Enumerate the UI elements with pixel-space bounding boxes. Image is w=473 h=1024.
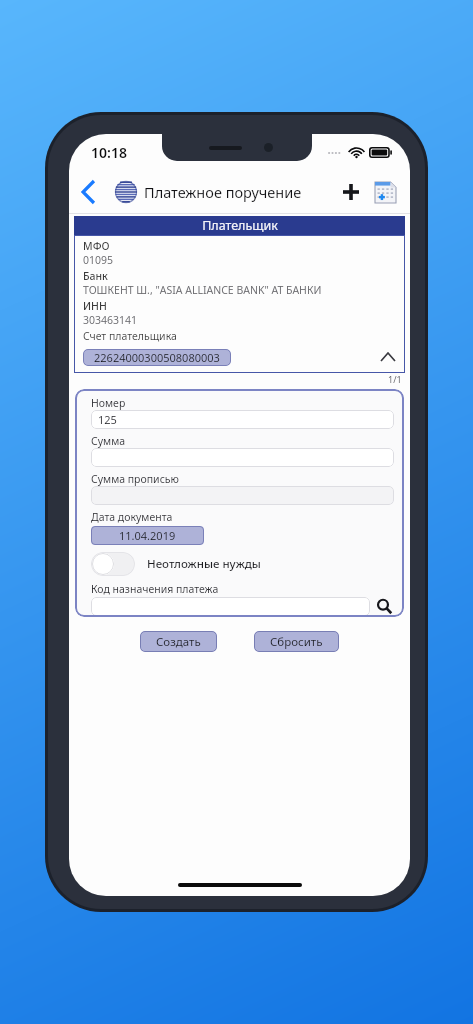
staticText: Сбросить xyxy=(270,634,323,650)
staticText: 22624000300508080003 xyxy=(94,350,220,365)
staticText: ИНН xyxy=(83,299,107,313)
button[interactable]: 125 xyxy=(91,410,394,429)
staticText: МФО xyxy=(83,239,110,253)
staticText: 125 xyxy=(98,412,117,427)
staticText: 1/1 xyxy=(388,373,402,385)
staticText: 10:18 xyxy=(91,143,127,162)
button[interactable]: Collapse xyxy=(377,346,399,368)
staticText: Платежное поручение xyxy=(144,182,302,202)
button[interactable]: Сбросить xyxy=(254,631,339,652)
button[interactable] xyxy=(91,486,394,505)
button[interactable]: Создать xyxy=(140,631,217,652)
staticText: Счет плательщика xyxy=(83,329,177,343)
staticText: ТОШКЕНТ Ш., "ASIA ALLIANCE BANK" АТ БАНК… xyxy=(83,283,322,297)
staticText: Код назначения платежа xyxy=(91,582,219,596)
staticText: Банк xyxy=(83,269,108,283)
button[interactable]: 11.04.2019 xyxy=(91,526,204,545)
staticText: 01095 xyxy=(83,253,114,267)
button[interactable]: Плательщик xyxy=(74,216,405,235)
staticText: Создать xyxy=(156,634,201,650)
staticText: Неотложные нужды xyxy=(147,556,261,572)
staticText: Сумма прописью xyxy=(91,472,179,486)
button[interactable] xyxy=(91,597,370,616)
staticText: Дата документа xyxy=(91,510,173,524)
button[interactable] xyxy=(91,448,394,467)
button[interactable] xyxy=(91,552,135,576)
button[interactable]: Back xyxy=(69,173,107,211)
button[interactable]: Search payment code xyxy=(374,596,394,616)
button[interactable]: 22624000300508080003 xyxy=(83,349,231,366)
staticText: Сумма xyxy=(91,434,126,448)
staticText: Плательщик xyxy=(202,217,278,234)
button[interactable]: New document xyxy=(368,175,402,209)
button[interactable]: Add xyxy=(336,177,366,207)
staticText: 303463141 xyxy=(83,313,138,327)
staticText: Номер xyxy=(91,396,126,410)
staticText: 11.04.2019 xyxy=(119,528,176,543)
